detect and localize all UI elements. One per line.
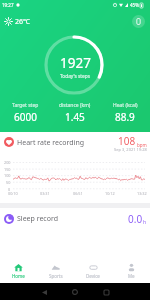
staticText: 1927 <box>60 54 91 72</box>
staticText: Device <box>86 273 100 279</box>
staticText: h <box>143 219 147 226</box>
staticText: bpm <box>137 142 147 148</box>
staticText: 45% <box>130 2 139 8</box>
button[interactable]: distance (km) <box>50 102 100 124</box>
staticText: 108 <box>118 134 136 148</box>
button[interactable]: Heart rate recording <box>0 132 150 203</box>
staticText: 00:10 <box>8 191 18 196</box>
staticText: Home <box>12 273 25 279</box>
staticText: 13:32 <box>137 191 147 196</box>
button[interactable]: Home <box>0 258 37 283</box>
staticText: 0 <box>8 187 11 192</box>
button[interactable]: Sleep record <box>0 208 150 230</box>
button[interactable]: Me <box>112 258 150 283</box>
staticText: Me <box>128 273 135 279</box>
button[interactable]: My device <box>132 15 145 28</box>
staticText: Sports <box>49 273 63 279</box>
staticText: 26℃ <box>15 17 30 27</box>
staticText: 1.45 <box>65 110 85 124</box>
staticText: 10:12 <box>105 191 115 196</box>
button[interactable]: Heat (kcal) <box>100 102 150 124</box>
button[interactable]: Sports <box>37 258 74 283</box>
staticText: 0.0 <box>128 212 143 226</box>
staticText: Today's steps <box>60 73 90 80</box>
staticText: 19:27 <box>2 2 14 8</box>
staticText: 03:31 <box>40 191 50 196</box>
staticText: 6000 <box>14 110 37 124</box>
staticText: Sleep record <box>17 214 59 224</box>
button[interactable]: Device <box>74 258 112 283</box>
staticText: distance (km) <box>59 102 91 109</box>
staticText: Heat (kcal) <box>113 102 138 109</box>
staticText: 50 <box>6 180 11 185</box>
staticText: 88.9 <box>115 110 135 124</box>
button[interactable]: Recents <box>99 285 113 299</box>
staticText: 100 <box>4 173 11 178</box>
staticText: Heart rate recording <box>17 138 85 148</box>
staticText: 150 <box>4 167 11 172</box>
button[interactable]: Target step <box>0 102 50 124</box>
staticText: Sep 3, 2021 19:28 <box>114 147 147 152</box>
button[interactable]: Home <box>68 285 82 299</box>
staticText: 06:51 <box>73 191 83 196</box>
staticText: 200 <box>4 160 11 165</box>
button[interactable]: Back <box>37 285 51 299</box>
staticText: Target step <box>12 102 39 109</box>
